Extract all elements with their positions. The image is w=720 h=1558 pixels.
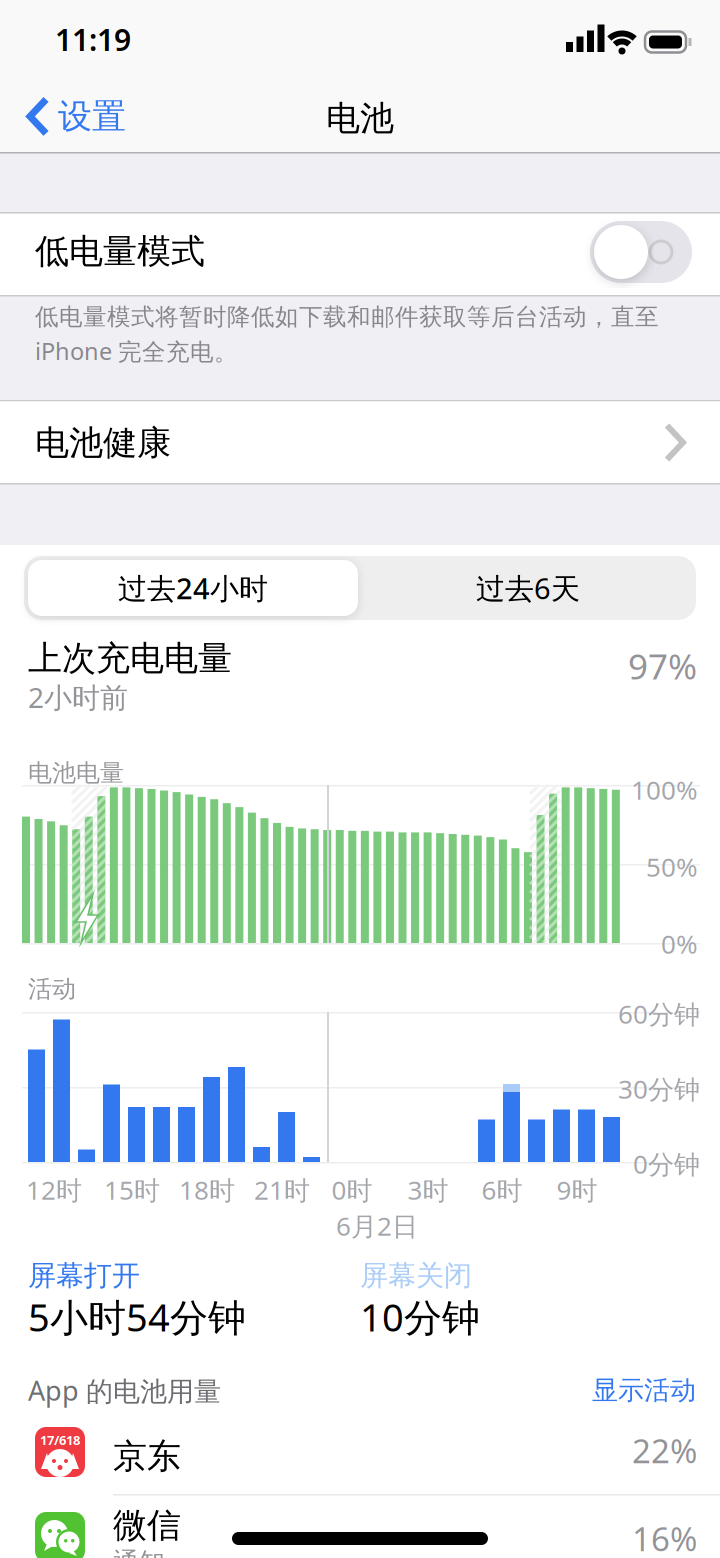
staticText: App 的电池用量 bbox=[28, 1372, 221, 1409]
staticText: 电池 bbox=[326, 97, 394, 140]
staticText: 上次充电电量 bbox=[28, 637, 232, 680]
button[interactable]: 过去6天 bbox=[363, 560, 693, 616]
staticText: 电池健康 bbox=[35, 421, 171, 464]
staticText: 22% bbox=[632, 1428, 697, 1473]
staticText: 97% bbox=[628, 642, 697, 690]
staticText: 6月2日 bbox=[336, 1208, 418, 1243]
button[interactable]: 微信 bbox=[0, 1496, 720, 1558]
button[interactable]: 17/618 bbox=[0, 1416, 720, 1490]
staticText: 过去6天 bbox=[476, 568, 580, 608]
staticText: 微信 bbox=[113, 1504, 181, 1547]
staticText: 0% bbox=[661, 926, 698, 961]
button[interactable]: 显示活动 bbox=[592, 1374, 696, 1407]
staticText: 21时 bbox=[254, 1172, 310, 1207]
staticText: 18时 bbox=[179, 1172, 235, 1207]
staticText: 活动 bbox=[28, 974, 76, 1004]
staticText: 通知 bbox=[113, 1546, 165, 1558]
staticText: 9时 bbox=[556, 1172, 597, 1207]
staticText: 屏幕关闭 bbox=[360, 1258, 472, 1293]
staticText: 10分钟 bbox=[360, 1291, 480, 1343]
button[interactable]: 过去24小时 bbox=[28, 560, 358, 616]
staticText: 16% bbox=[632, 1516, 697, 1558]
staticText: 5小时54分钟 bbox=[28, 1291, 246, 1343]
staticText: 设置 bbox=[58, 95, 126, 138]
button[interactable]: 屏幕打开 bbox=[28, 1258, 268, 1348]
staticText: 京东 bbox=[113, 1435, 181, 1478]
staticText: 3时 bbox=[407, 1172, 448, 1207]
staticText: 15时 bbox=[104, 1172, 160, 1207]
staticText: iPhone 完全充电。 bbox=[35, 335, 238, 367]
button[interactable]: 设置 bbox=[26, 95, 126, 138]
staticText: 0分钟 bbox=[633, 1146, 700, 1181]
staticText: 50% bbox=[646, 849, 698, 884]
staticText: 60分钟 bbox=[618, 996, 700, 1031]
staticText: 6时 bbox=[481, 1172, 522, 1207]
staticText: 0时 bbox=[331, 1172, 372, 1207]
staticText: 2小时前 bbox=[28, 678, 128, 716]
button[interactable]: 屏幕关闭 bbox=[360, 1258, 600, 1348]
staticText: 12时 bbox=[26, 1172, 82, 1207]
staticText: 屏幕打开 bbox=[28, 1258, 140, 1293]
staticText: 显示活动 bbox=[592, 1374, 696, 1407]
staticText: 11:19 bbox=[55, 19, 131, 60]
staticText: 100% bbox=[631, 772, 698, 807]
staticText: 过去24小时 bbox=[118, 568, 268, 608]
button[interactable]: 电池健康 bbox=[0, 401, 720, 483]
button[interactable]: 低电量模式 bbox=[590, 221, 692, 283]
staticText: 电池电量 bbox=[28, 758, 124, 788]
staticText: 低电量模式将暂时降低如下载和邮件获取等后台活动，直至 bbox=[35, 302, 659, 332]
staticText: 30分钟 bbox=[618, 1071, 700, 1106]
staticText: 低电量模式 bbox=[35, 230, 205, 273]
staticText: 17/618 bbox=[40, 1431, 80, 1449]
